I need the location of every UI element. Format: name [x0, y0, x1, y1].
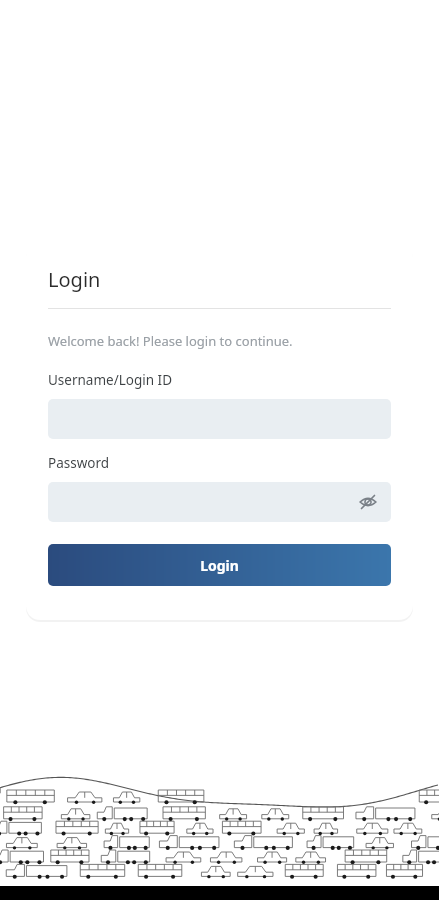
- button[interactable]: Show password: [355, 489, 381, 515]
- button[interactable]: Show password: [48, 482, 391, 522]
- staticText: Login: [48, 266, 101, 293]
- staticText: Password: [48, 454, 110, 472]
- staticText: Welcome back! Please login to continue.: [48, 332, 293, 350]
- staticText: Login: [200, 556, 239, 575]
- button[interactable]: Login: [48, 544, 391, 586]
- staticText: Username/Login ID: [48, 371, 173, 389]
